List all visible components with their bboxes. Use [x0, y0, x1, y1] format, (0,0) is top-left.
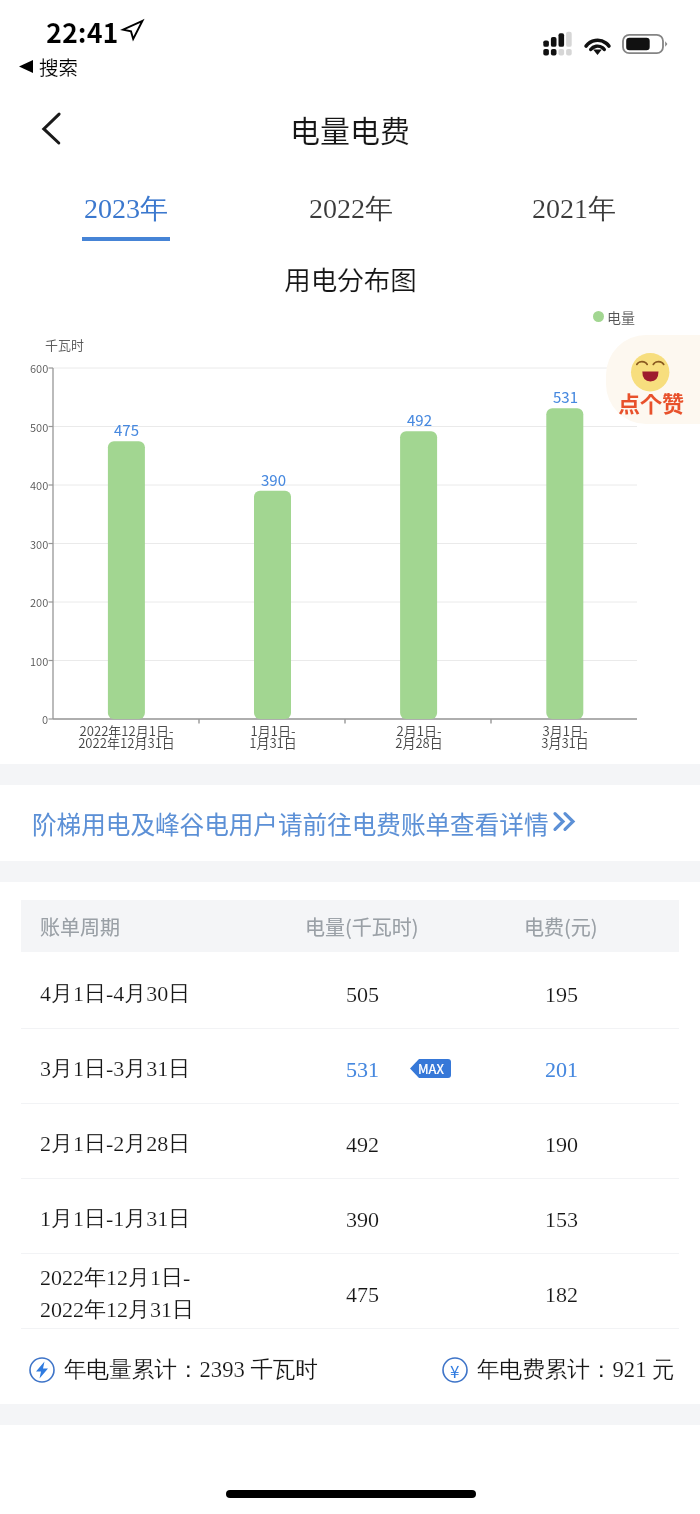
staticText: ¥	[450, 1358, 460, 1383]
staticText: 200	[30, 594, 49, 610]
button[interactable]: 1月1日-1月31日	[21, 1179, 679, 1254]
button[interactable]: 阶梯用电及峰谷电用户请前往电费账单查看详情	[0, 785, 700, 861]
staticText: 账单周期	[40, 912, 120, 941]
staticText: 492	[346, 1132, 379, 1156]
staticText: 500	[30, 419, 49, 435]
staticText: 3月1日- 3月31日	[541, 721, 589, 751]
button[interactable]: 2021年	[463, 191, 685, 253]
button[interactable]: 2023年	[15, 191, 237, 253]
staticText: 100	[30, 653, 49, 669]
staticText: 600	[30, 360, 49, 376]
staticText: 531	[553, 386, 578, 408]
staticText: 电量	[607, 307, 635, 327]
staticText: MAX	[418, 1059, 444, 1078]
button[interactable]: Back	[22, 100, 82, 158]
staticText: 2月1日-2月28日	[40, 1130, 191, 1158]
staticText: 390	[346, 1207, 379, 1231]
button[interactable]: 4月1日-4月30日	[21, 954, 679, 1029]
button[interactable]: 2022年12月1日- 2022年12月31日	[21, 1254, 679, 1329]
staticText: 4月1日-4月30日	[40, 980, 191, 1008]
staticText: 电费(元)	[524, 912, 598, 941]
staticText: 电量(千瓦时)	[305, 912, 419, 941]
staticText: 3月1日-3月31日	[40, 1055, 191, 1083]
staticText: 390	[261, 469, 286, 491]
button[interactable]: Like	[606, 335, 700, 424]
staticText: 505	[346, 982, 379, 1006]
staticText: 年电量累计：2393 千瓦时	[64, 1355, 319, 1383]
staticText: 点个赞	[618, 386, 685, 416]
button[interactable]: 3月1日-3月31日	[21, 1029, 679, 1104]
staticText: 年电费累计：921 元	[477, 1355, 675, 1383]
staticText: 1月1日-1月31日	[40, 1205, 191, 1233]
staticText: 475	[346, 1282, 379, 1306]
staticText: 2021年	[532, 191, 616, 226]
staticText: 190	[545, 1132, 578, 1156]
staticText: 2023年	[84, 191, 168, 226]
staticText: 475	[114, 419, 139, 441]
staticText: 195	[545, 982, 578, 1006]
staticText: 201	[545, 1057, 578, 1081]
staticText: 搜索	[39, 52, 79, 80]
staticText: 492	[407, 409, 432, 431]
button[interactable]: 2022年	[240, 191, 462, 253]
staticText: 用电分布图	[284, 259, 417, 297]
staticText: 300	[30, 536, 49, 552]
staticText: 2022年12月1日- 2022年12月31日	[40, 1264, 194, 1323]
staticText: 0	[42, 711, 49, 727]
staticText: 153	[545, 1207, 578, 1231]
staticText: 531	[346, 1057, 379, 1081]
staticText: 2022年12月1日- 2022年12月31日	[78, 721, 175, 751]
staticText: 400	[30, 477, 49, 493]
staticText: 1月1日- 1月31日	[249, 721, 297, 751]
button[interactable]: 搜索	[10, 51, 100, 81]
button[interactable]: 2月1日-2月28日	[21, 1104, 679, 1179]
staticText: 2022年	[309, 191, 393, 226]
staticText: 182	[545, 1282, 578, 1306]
staticText: 阶梯用电及峰谷电用户请前往电费账单查看详情	[32, 805, 549, 841]
staticText: 千瓦时	[45, 335, 85, 354]
staticText: 2月1日- 2月28日	[395, 721, 443, 751]
staticText: 电量电费	[290, 107, 410, 150]
staticText: 22:41	[46, 12, 119, 46]
